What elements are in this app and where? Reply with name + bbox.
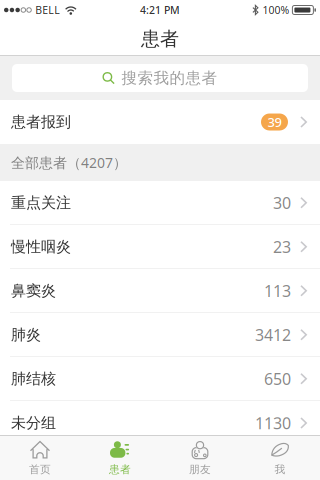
staticText: 3412: [255, 324, 291, 346]
staticText: 重点关注: [11, 193, 71, 212]
staticText: 30: [273, 192, 291, 214]
staticText: 患者: [109, 463, 131, 476]
staticText: 鼻窦炎: [11, 281, 56, 300]
staticText: 100%: [262, 3, 289, 17]
button[interactable]: 患者: [80, 436, 160, 480]
staticText: 朋友: [189, 463, 211, 476]
staticText: 慢性咽炎: [11, 237, 71, 256]
staticText: 搜索我的患者: [121, 68, 217, 88]
button[interactable]: 我: [240, 436, 320, 480]
button[interactable]: 未分组: [0, 401, 320, 445]
button[interactable]: 搜索我的患者: [12, 64, 308, 92]
button[interactable]: 患者报到: [0, 100, 320, 144]
button[interactable]: 朋友: [160, 436, 240, 480]
staticText: 患者: [141, 27, 179, 51]
staticText: 39: [267, 113, 281, 131]
staticText: 全部患者（4207）: [11, 153, 127, 172]
staticText: 未分组: [11, 414, 56, 432]
button[interactable]: 肺炎: [0, 313, 320, 357]
button[interactable]: 慢性咽炎: [0, 225, 320, 269]
staticText: 23: [273, 236, 291, 258]
staticText: 患者报到: [11, 113, 71, 131]
staticText: 113: [264, 280, 291, 302]
staticText: 1130: [255, 412, 291, 434]
button[interactable]: 首页: [0, 436, 80, 480]
button[interactable]: 肺结核: [0, 357, 320, 401]
staticText: 4:21 PM: [140, 3, 180, 17]
staticText: 我: [274, 463, 285, 476]
staticText: 首页: [29, 463, 51, 476]
button[interactable]: 鼻窦炎: [0, 269, 320, 313]
staticText: BELL: [35, 3, 60, 17]
staticText: 650: [264, 368, 291, 390]
staticText: 肺结核: [11, 369, 56, 388]
button[interactable]: 重点关注: [0, 181, 320, 225]
staticText: 肺炎: [11, 325, 41, 344]
